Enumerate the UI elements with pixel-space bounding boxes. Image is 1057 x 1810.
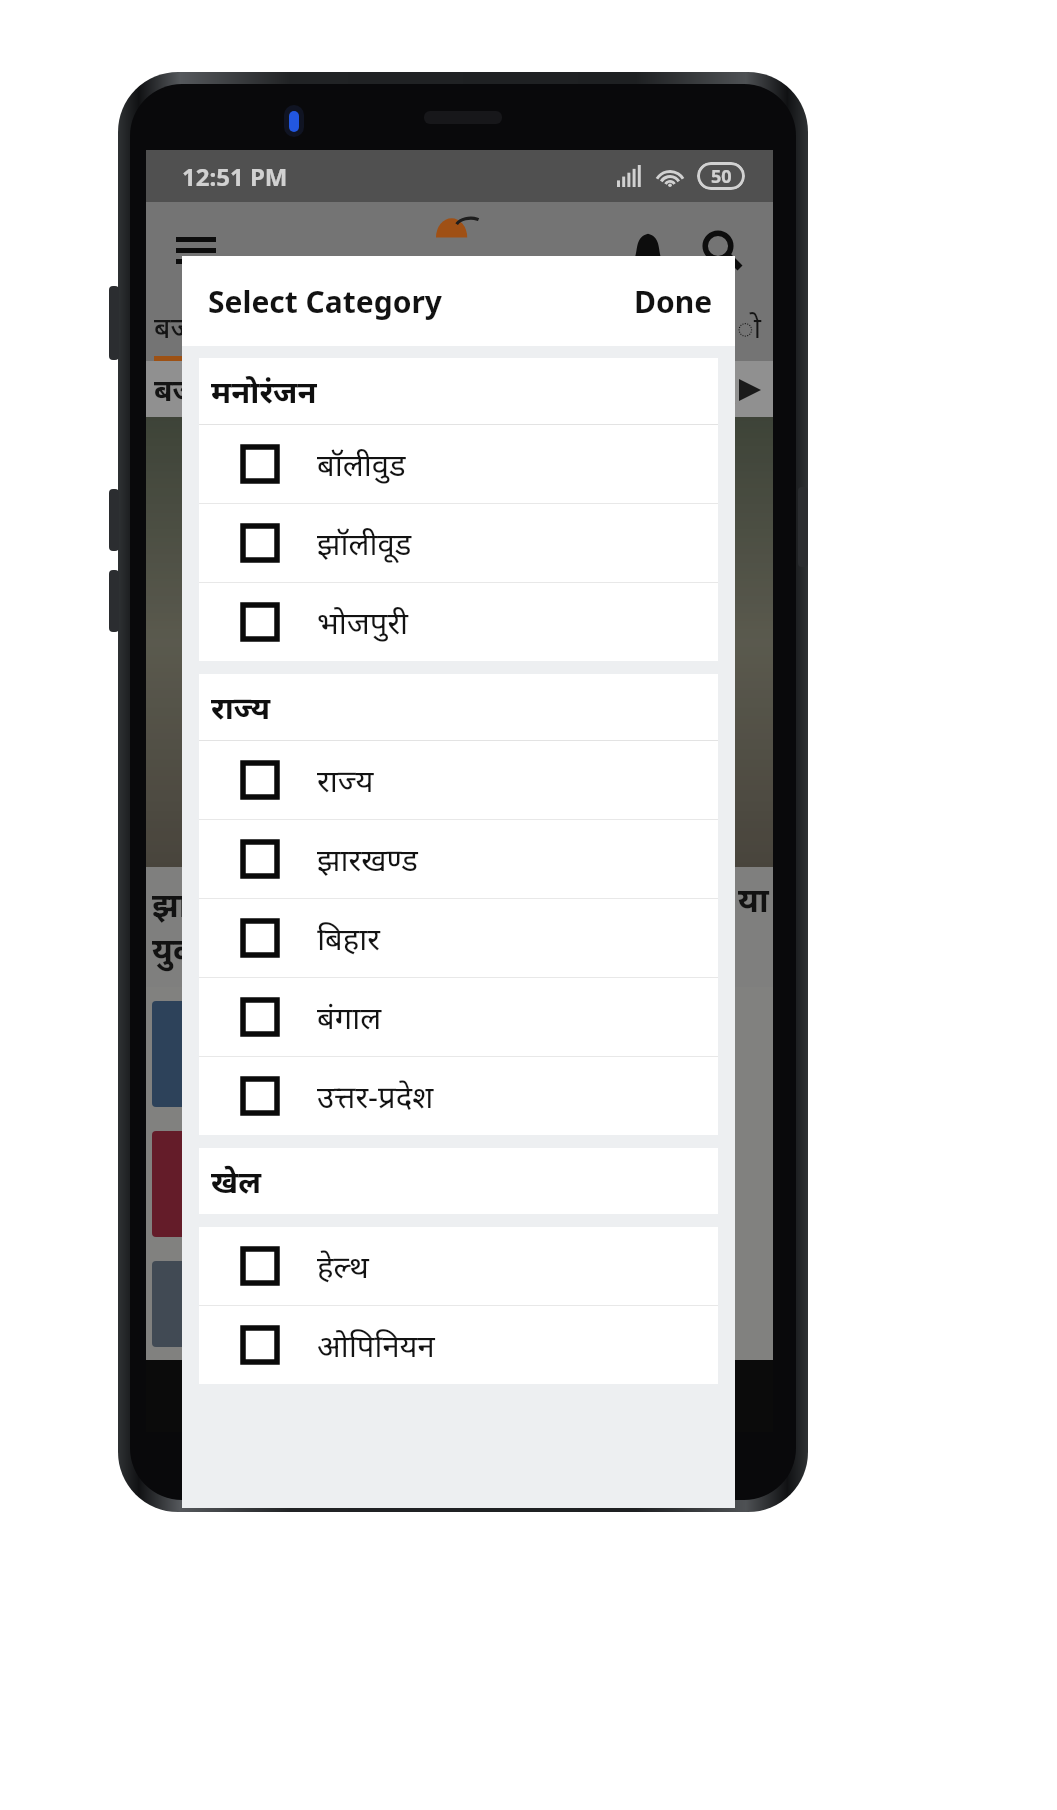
button[interactable]: झॉलीवूड [199, 504, 718, 582]
staticText: बज [154, 369, 197, 410]
button[interactable]: ओपिनियन [199, 1306, 718, 1384]
button[interactable]: बिहार [199, 899, 718, 977]
staticText: खेल [211, 1160, 262, 1202]
staticText: उत्तर-प्रदेश [317, 1075, 434, 1117]
staticText: मनोरंजन [211, 370, 317, 412]
button[interactable]: राज्य [199, 741, 718, 819]
button[interactable]: Done [634, 281, 713, 322]
button[interactable]: Notifications [619, 221, 677, 279]
button[interactable]: हेल्थ [199, 1227, 718, 1305]
staticText: 50 [711, 164, 732, 189]
button[interactable]: झारखण्ड [199, 820, 718, 898]
button[interactable]: उत्तर-प्रदेश [199, 1057, 718, 1135]
button[interactable]: Install [638, 1364, 722, 1428]
staticText: प्रभात खबर [372, 241, 547, 291]
button[interactable]: Menu [166, 220, 226, 280]
staticText: भोजपुरी [317, 601, 409, 643]
staticText: बजट [154, 308, 206, 346]
button[interactable]: बॉलीवुड [199, 425, 718, 503]
button[interactable]: बंगाल [199, 978, 718, 1056]
staticText: बॉलीवुड [317, 443, 406, 485]
staticText: हेल्थ [317, 1245, 369, 1287]
staticText: राज्य [317, 759, 374, 801]
staticText: ो [737, 308, 761, 346]
staticText: झारखण्ड [317, 838, 418, 880]
staticText: 12:51 PM [182, 160, 288, 193]
staticText: झॉलीवूड [317, 522, 412, 564]
staticText: बिहार [317, 917, 380, 959]
staticText: या [738, 877, 769, 922]
staticText: बंगाल [317, 996, 382, 1038]
staticText: युव [152, 927, 193, 972]
button[interactable]: भोजपुरी [199, 583, 718, 661]
staticText: ओपिनियन [317, 1324, 435, 1366]
staticText: झा [152, 882, 189, 927]
button[interactable]: Search [693, 221, 751, 279]
staticText: Select Category [208, 281, 442, 322]
staticText: राज्य [211, 686, 271, 728]
staticText: Done [634, 281, 713, 322]
